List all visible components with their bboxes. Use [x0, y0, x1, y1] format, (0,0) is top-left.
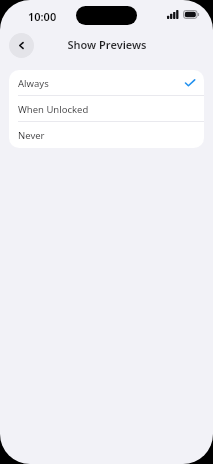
staticText: Show Previews: [67, 37, 147, 52]
button[interactable]: When Unlocked: [9, 96, 204, 122]
button[interactable]: Never: [9, 122, 204, 148]
button[interactable]: Back: [9, 33, 34, 58]
staticText: 10:00: [28, 9, 57, 24]
button[interactable]: Always: [9, 70, 204, 96]
staticText: Always: [18, 77, 49, 90]
staticText: Never: [18, 129, 45, 142]
staticText: When Unlocked: [18, 103, 89, 116]
